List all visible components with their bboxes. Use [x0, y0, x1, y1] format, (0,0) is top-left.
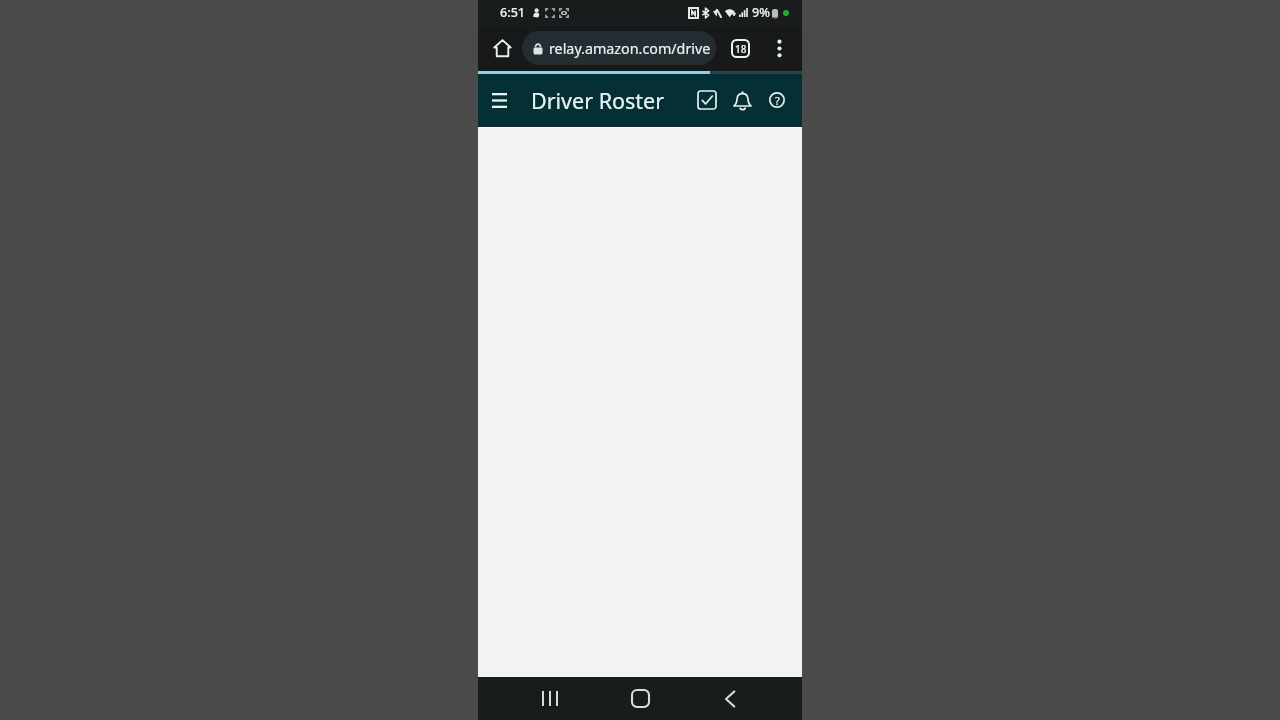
- button[interactable]: Open navigation menu: [484, 85, 515, 116]
- button[interactable]: Home: [614, 677, 666, 720]
- button[interactable]: relay.amazon.com/drive: [522, 31, 716, 65]
- staticText: ?: [775, 93, 780, 108]
- staticText: 6:51: [500, 4, 526, 21]
- staticText: relay.amazon.com/drive: [549, 39, 711, 58]
- button[interactable]: More options: [765, 34, 793, 62]
- button[interactable]: Help: [761, 85, 793, 117]
- button[interactable]: Home: [489, 35, 515, 61]
- staticText: 9%: [752, 4, 770, 21]
- button[interactable]: Recent apps: [524, 677, 576, 720]
- button[interactable]: Notifications: [726, 85, 758, 117]
- button[interactable]: Back: [704, 677, 756, 720]
- button[interactable]: Tasks: [691, 85, 723, 117]
- staticText: 18: [735, 42, 747, 56]
- staticText: Driver Roster: [531, 86, 665, 115]
- button[interactable]: Open tabs: [726, 34, 754, 62]
